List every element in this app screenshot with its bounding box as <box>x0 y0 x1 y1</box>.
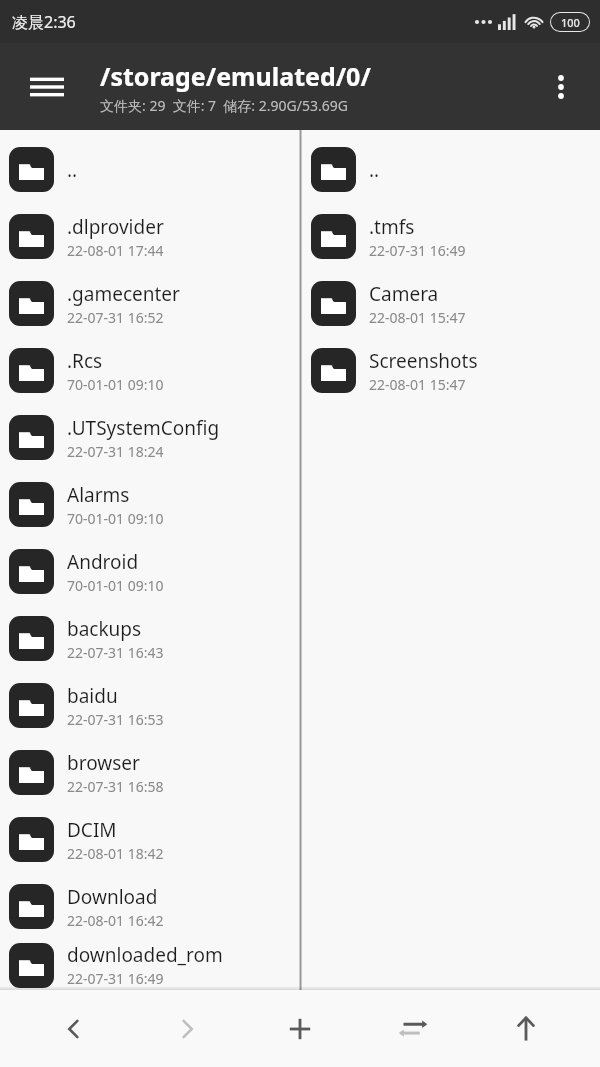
button[interactable]: baidu <box>0 672 299 739</box>
staticText: Android <box>67 549 139 575</box>
staticText: 22-07-31 16:49 <box>67 969 164 988</box>
button[interactable]: Swap panes <box>374 994 452 1064</box>
staticText: .. <box>369 157 380 183</box>
staticText: 22-07-31 16:43 <box>67 643 164 662</box>
button[interactable]: .dlprovider <box>0 203 299 270</box>
staticText: 22-08-01 17:44 <box>67 241 164 260</box>
staticText: 22-07-31 16:58 <box>67 777 164 796</box>
staticText: .UTSystemConfig <box>67 415 220 441</box>
staticText: 22-07-31 18:24 <box>67 442 164 461</box>
staticText: 22-07-31 16:52 <box>67 308 164 327</box>
button[interactable]: .. <box>302 136 600 203</box>
staticText: /storage/emulated/0/ <box>100 59 371 93</box>
button[interactable]: .tmfs <box>302 203 600 270</box>
button[interactable]: downloaded_rom <box>0 940 299 990</box>
button[interactable]: browser <box>0 739 299 806</box>
button[interactable]: Menu <box>20 60 74 114</box>
button[interactable]: .Rcs <box>0 337 299 404</box>
staticText: .. <box>67 157 78 183</box>
staticText: 70-01-01 09:10 <box>67 576 164 595</box>
button[interactable]: Back <box>35 994 113 1064</box>
staticText: 22-08-01 16:42 <box>67 911 164 930</box>
staticText: Camera <box>369 281 439 307</box>
staticText: .Rcs <box>67 348 103 374</box>
button[interactable]: .UTSystemConfig <box>0 404 299 471</box>
staticText: 22-07-31 16:53 <box>67 710 164 729</box>
staticText: downloaded_rom <box>67 942 223 968</box>
button[interactable]: Android <box>0 538 299 605</box>
button[interactable]: .. <box>0 136 299 203</box>
button[interactable]: backups <box>0 605 299 672</box>
button[interactable]: DCIM <box>0 806 299 873</box>
staticText: .gamecenter <box>67 281 180 307</box>
button[interactable]: .gamecenter <box>0 270 299 337</box>
button[interactable]: Camera <box>302 270 600 337</box>
button[interactable]: Alarms <box>0 471 299 538</box>
staticText: 70-01-01 09:10 <box>67 509 164 528</box>
staticText: 22-07-31 16:49 <box>369 241 466 260</box>
button[interactable]: More options <box>536 62 586 112</box>
staticText: .tmfs <box>369 214 415 240</box>
staticText: browser <box>67 750 140 776</box>
button[interactable]: Screenshots <box>302 337 600 404</box>
staticText: 文件夹: 29 文件: 7 储存: 2.90G/53.69G <box>100 96 348 115</box>
staticText: Alarms <box>67 482 130 508</box>
button[interactable]: Download <box>0 873 299 940</box>
staticText: baidu <box>67 683 118 709</box>
staticText: DCIM <box>67 817 117 843</box>
button[interactable]: Forward <box>148 994 226 1064</box>
staticText: 22-08-01 18:42 <box>67 844 164 863</box>
staticText: 70-01-01 09:10 <box>67 375 164 394</box>
staticText: .dlprovider <box>67 214 164 240</box>
staticText: 100 <box>561 15 580 30</box>
staticText: backups <box>67 616 142 642</box>
staticText: Screenshots <box>369 348 478 374</box>
button[interactable]: Add <box>261 994 339 1064</box>
staticText: 凌晨2:36 <box>12 11 76 33</box>
staticText: Download <box>67 884 158 910</box>
staticText: 22-08-01 15:47 <box>369 375 466 394</box>
button[interactable]: Up <box>487 994 565 1064</box>
staticText: 22-08-01 15:47 <box>369 308 466 327</box>
